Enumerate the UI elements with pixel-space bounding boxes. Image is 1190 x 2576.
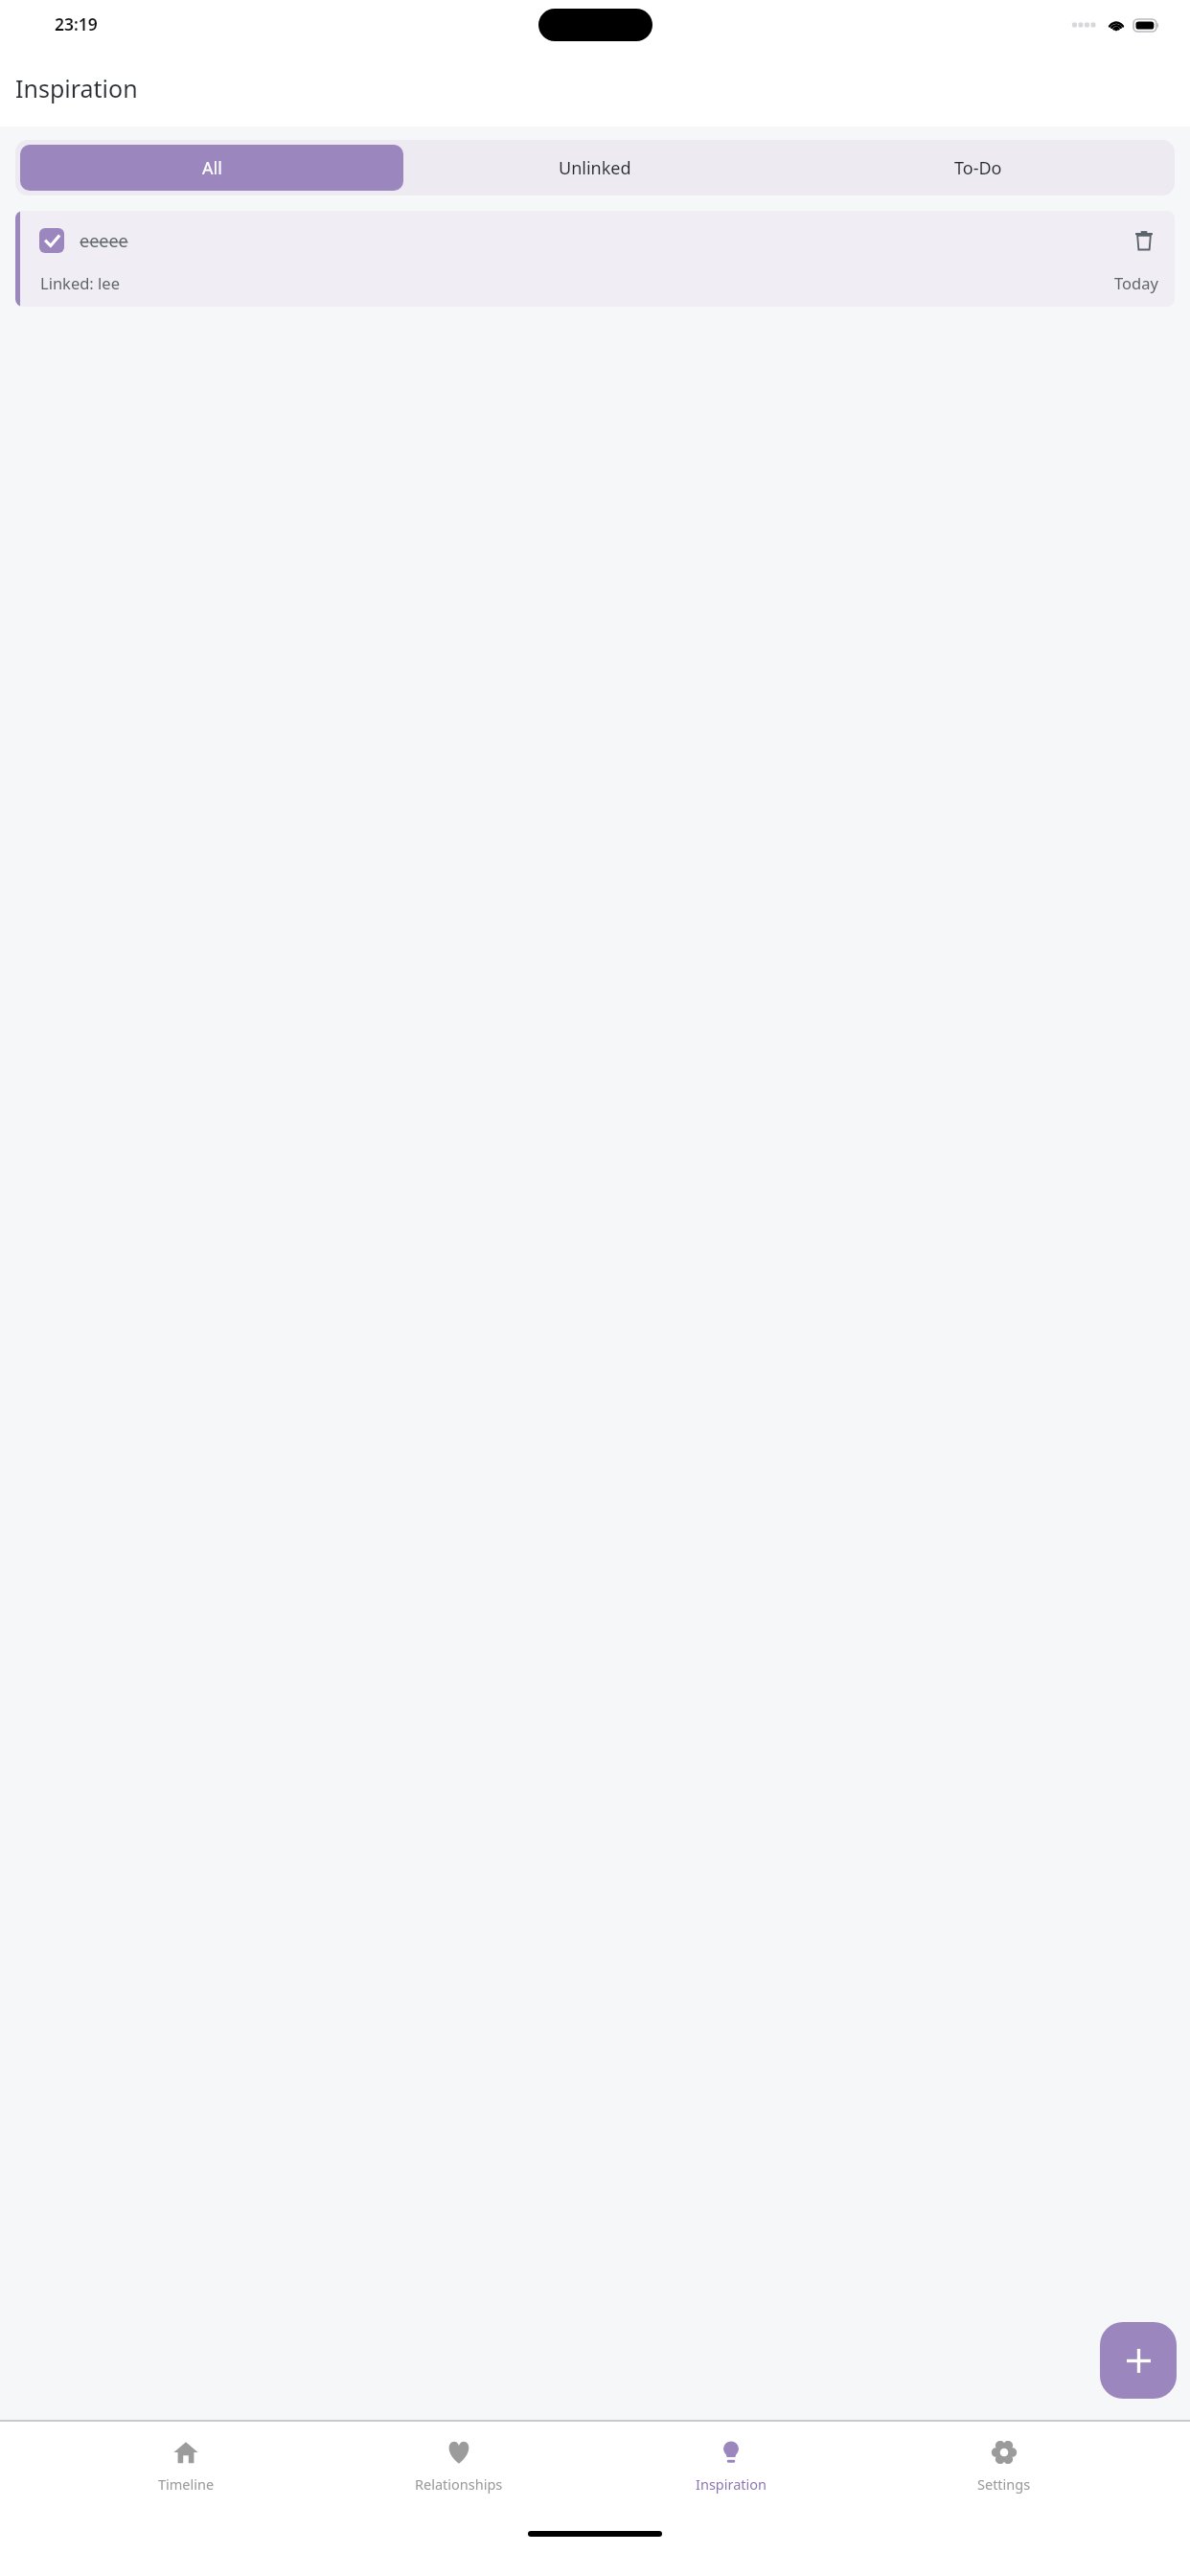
button[interactable]: Unlinked [403, 145, 787, 191]
button[interactable]: Toggle done [15, 211, 1175, 307]
staticText: 23:19 [55, 12, 98, 35]
staticText: Today [1114, 272, 1158, 293]
staticText: Inspiration [696, 2474, 767, 2494]
button[interactable]: Timeline [100, 2422, 272, 2513]
staticText: Linked: lee [40, 272, 120, 293]
staticText: Relationships [415, 2474, 503, 2494]
staticText: All [202, 156, 222, 180]
staticText: Settings [977, 2474, 1031, 2494]
button[interactable]: Settings [918, 2422, 1090, 2513]
button[interactable]: Delete [1130, 226, 1158, 255]
staticText: Unlinked [559, 156, 631, 180]
button[interactable]: Relationships [373, 2422, 545, 2513]
button[interactable]: All [20, 145, 403, 191]
button[interactable]: Toggle done [39, 228, 64, 253]
button[interactable]: Add [1100, 2322, 1177, 2399]
staticText: eeeee [80, 229, 128, 253]
staticText: To-Do [954, 156, 1002, 180]
button[interactable]: To-Do [787, 145, 1170, 191]
button[interactable]: Inspiration [645, 2422, 817, 2513]
staticText: Timeline [158, 2474, 215, 2494]
staticText: Inspiration [15, 72, 138, 104]
